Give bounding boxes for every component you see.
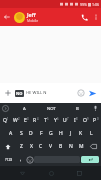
- staticText: Jeff: [27, 11, 36, 18]
- staticText: H: [59, 130, 63, 137]
- button[interactable]: Home: [44, 166, 58, 180]
- staticText: 0: [97, 117, 99, 121]
- staticText: 1:06: [92, 2, 99, 7]
- staticText: N: [69, 143, 73, 150]
- button[interactable]: Q: [0, 114, 11, 127]
- staticText: F: [40, 130, 43, 137]
- button[interactable]: H: [56, 127, 66, 140]
- button[interactable]: M: [76, 140, 86, 153]
- button[interactable]: B: [56, 140, 66, 153]
- staticText: E: [24, 117, 27, 124]
- button[interactable]: S: [16, 127, 26, 140]
- button[interactable]: Emoji: [76, 88, 86, 98]
- button[interactable]: T: [41, 114, 51, 127]
- button[interactable]: Emoji keyboard: [25, 153, 34, 166]
- button[interactable]: Jeff: [27, 11, 77, 23]
- staticText: B: [59, 143, 63, 150]
- button[interactable]: Back: [15, 166, 29, 180]
- button[interactable]: Shift: [0, 140, 16, 153]
- staticText: 3: [27, 117, 29, 121]
- button[interactable]: Y: [51, 114, 61, 127]
- button[interactable]: Add attachment: [3, 88, 13, 98]
- button[interactable]: D: [26, 127, 36, 140]
- staticText: R: [33, 117, 37, 124]
- staticText: 8: [76, 117, 78, 121]
- staticText: 5: [47, 117, 49, 121]
- button[interactable]: K: [76, 127, 86, 140]
- button[interactable]: N: [66, 140, 76, 153]
- button[interactable]: ?123: [1, 153, 16, 166]
- button[interactable]: Send: [87, 88, 98, 99]
- staticText: Z: [20, 143, 23, 150]
- button[interactable]: C: [36, 140, 46, 153]
- staticText: G: [49, 130, 53, 137]
- staticText: Mobile: [27, 18, 39, 23]
- staticText: NO: [16, 91, 23, 96]
- staticText: Q: [3, 117, 7, 124]
- button[interactable]: Contact avatar: [14, 12, 25, 23]
- button[interactable]: X: [26, 140, 36, 153]
- button[interactable]: Voice input: [90, 103, 101, 114]
- staticText: 2: [18, 117, 20, 121]
- button[interactable]: Call: [77, 10, 91, 24]
- staticText: I: [74, 117, 76, 124]
- staticText: L: [90, 130, 93, 137]
- button[interactable]: J: [66, 127, 76, 140]
- staticText: Y: [54, 117, 57, 124]
- button[interactable]: W: [11, 114, 21, 127]
- staticText: P: [93, 117, 97, 124]
- button[interactable]: P: [91, 114, 101, 127]
- button[interactable]: L: [86, 127, 96, 140]
- staticText: 4: [37, 117, 39, 121]
- button[interactable]: A: [11, 103, 38, 114]
- staticText: O: [83, 117, 87, 124]
- staticText: HE WILL N: [26, 90, 76, 96]
- button[interactable]: Comma: [16, 153, 25, 166]
- staticText: ,: [20, 156, 22, 163]
- button[interactable]: I: [71, 114, 81, 127]
- button[interactable]: Back: [0, 10, 14, 24]
- staticText: W: [13, 117, 18, 124]
- staticText: A: [23, 106, 26, 112]
- staticText: K: [79, 130, 83, 137]
- staticText: C: [39, 143, 43, 150]
- staticText: S: [20, 130, 23, 137]
- button[interactable]: NOT: [38, 103, 64, 114]
- staticText: V: [49, 143, 53, 150]
- button[interactable]: V: [46, 140, 56, 153]
- staticText: 9: [87, 117, 89, 121]
- staticText: 7: [67, 117, 69, 121]
- button[interactable]: A: [6, 127, 16, 140]
- button[interactable]: Expand suggestions: [0, 103, 11, 114]
- button[interactable]: Backspace: [86, 140, 101, 153]
- staticText: ?123: [5, 157, 13, 162]
- button[interactable]: E: [21, 114, 31, 127]
- button[interactable]: R: [31, 114, 41, 127]
- button[interactable]: U: [61, 114, 71, 127]
- button[interactable]: More options: [91, 12, 101, 22]
- button[interactable]: B: [64, 103, 90, 114]
- staticText: J: [70, 130, 72, 137]
- button[interactable]: F: [36, 127, 46, 140]
- staticText: D: [29, 130, 33, 137]
- staticText: 6: [57, 117, 59, 121]
- staticText: M: [79, 143, 84, 150]
- staticText: A: [9, 130, 13, 137]
- staticText: NOT: [47, 106, 56, 112]
- button[interactable]: Enter: [81, 156, 99, 163]
- staticText: U: [63, 117, 67, 124]
- button[interactable]: Recent apps: [72, 166, 86, 180]
- button[interactable]: O: [81, 114, 91, 127]
- button[interactable]: G: [46, 127, 56, 140]
- staticText: T: [44, 117, 47, 124]
- button[interactable]: Z: [16, 140, 26, 153]
- staticText: 99%: [80, 2, 87, 7]
- staticText: X: [30, 143, 33, 150]
- staticText: 1: [7, 117, 9, 121]
- staticText: B: [76, 106, 79, 112]
